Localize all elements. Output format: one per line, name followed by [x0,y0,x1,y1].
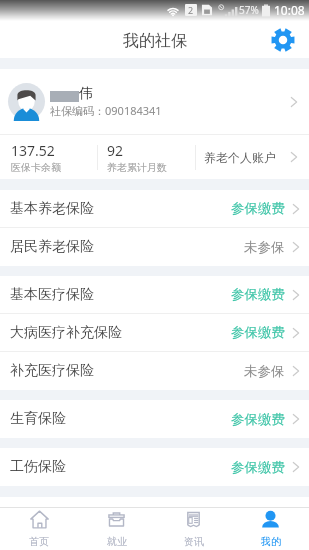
staticText: 参保缴费 [231,459,285,476]
button[interactable]: 工伤保险 [0,448,309,486]
staticText: 基本医疗保险 [10,286,94,304]
staticText: 工伤保险 [10,458,66,476]
staticText: 参保缴费 [231,324,285,341]
staticText: 参保缴费 [231,286,285,303]
staticText: 我的社保 [123,31,187,51]
button[interactable]: 基本医疗保险 [0,276,309,313]
staticText: 居民养老保险 [10,238,94,256]
button[interactable]: 就业 [78,508,155,550]
staticText: 就业 [107,535,127,548]
staticText: 2 [188,4,194,16]
staticText: 医保卡余额 [11,161,61,174]
button[interactable]: 居民养老保险 [0,228,309,266]
button[interactable]: 补充医疗保险 [0,352,309,390]
staticText: 我的 [261,535,281,548]
button[interactable]: 我的 [232,508,309,550]
staticText: 补充医疗保险 [10,362,94,380]
button[interactable]: 资讯 [155,508,232,550]
staticText: 资讯 [184,535,204,548]
button[interactable]: Settings [270,27,296,53]
staticText: 养老累计月数 [107,161,167,174]
staticText: 生育保险 [10,410,66,428]
staticText: 10:08 [274,2,305,18]
staticText: 未参保 [244,239,285,256]
button[interactable]: 伟 [0,69,309,134]
staticText: 57% [239,3,259,17]
button[interactable]: 生育保险 [0,400,309,438]
staticText: 养老个人账户 [204,150,276,165]
staticText: 社保编码：090184341 [50,103,162,118]
button[interactable]: 大病医疗补充保险 [0,314,309,351]
staticText: 参保缴费 [231,411,285,428]
button[interactable]: 基本养老保险 [0,190,309,227]
staticText: 伟 [79,85,93,103]
staticText: 大病医疗补充保险 [10,324,122,342]
staticText: 未参保 [244,363,285,380]
staticText: 参保缴费 [231,200,285,217]
staticText: 137.52 [11,141,55,160]
staticText: 92 [107,141,124,160]
button[interactable]: 养老个人账户 [196,135,309,179]
staticText: 基本养老保险 [10,200,94,218]
button[interactable]: 首页 [0,508,78,550]
staticText: 首页 [29,535,49,548]
